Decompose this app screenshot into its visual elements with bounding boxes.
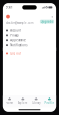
button[interactable]: More options [50, 15, 54, 19]
staticText: Log out [10, 52, 21, 55]
button[interactable]: Privacy [3, 33, 56, 38]
button[interactable]: Notifications [3, 43, 56, 48]
button[interactable]: Upgrade [40, 20, 54, 23]
staticText: Explore [18, 101, 28, 105]
staticText: Upgrade [40, 20, 53, 23]
button[interactable]: Explore [16, 95, 29, 107]
staticText: Home [5, 101, 13, 105]
staticText: Appearance [10, 38, 26, 42]
button[interactable]: Library [29, 95, 43, 107]
staticText: Privacy [10, 34, 18, 37]
staticText: Account [10, 29, 21, 32]
staticText: 9:41 [6, 6, 13, 9]
staticText: Library [32, 101, 40, 105]
button[interactable]: Appearance [3, 38, 56, 43]
button[interactable]: Home [3, 95, 16, 107]
button[interactable]: Account [3, 28, 56, 33]
button[interactable]: Log out [3, 51, 56, 56]
button[interactable]: Profile [43, 95, 56, 107]
staticText: Notifications [10, 43, 27, 47]
staticText: alex.kim@example.com [6, 21, 33, 25]
staticText: Profile [44, 101, 54, 105]
